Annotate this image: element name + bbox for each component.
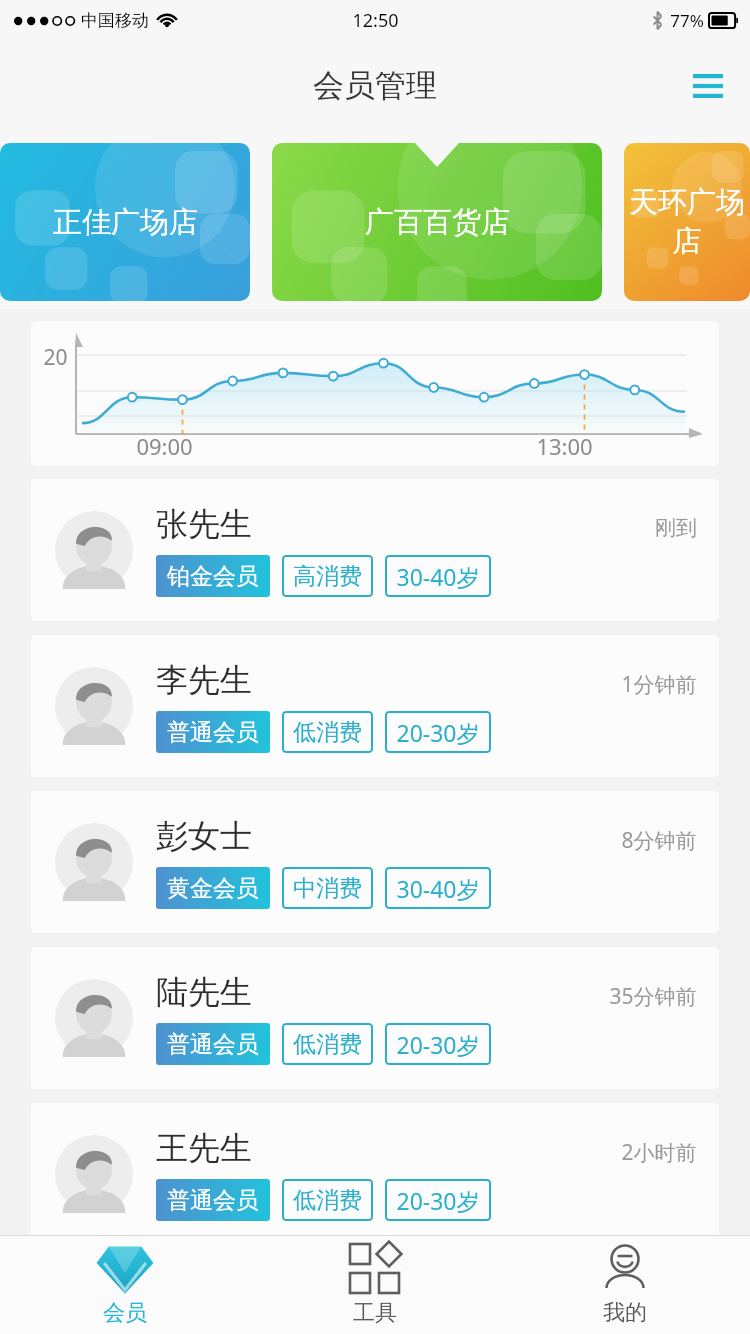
staticText: 黄金会员 — [167, 874, 259, 903]
button[interactable]: 30-40岁 — [385, 555, 491, 597]
button[interactable]: 20-30岁 — [385, 1023, 491, 1065]
staticText: 工具 — [353, 1299, 397, 1327]
staticText: 李先生 — [156, 660, 252, 700]
button[interactable]: 20 — [31, 321, 719, 466]
button[interactable]: 铂金会员 — [156, 555, 270, 597]
button[interactable]: 广百百货店 — [272, 143, 602, 301]
button[interactable]: Menu — [680, 58, 736, 114]
staticText: 天环广场店 — [624, 184, 750, 260]
staticText: 低消费 — [293, 1030, 362, 1059]
button[interactable]: 李先生 — [31, 635, 719, 777]
button[interactable]: 我的 — [500, 1236, 750, 1334]
button[interactable]: 普通会员 — [156, 1179, 270, 1221]
staticText: 我的 — [603, 1299, 647, 1327]
button[interactable]: 高消费 — [282, 555, 373, 597]
staticText: 30-40岁 — [396, 873, 480, 904]
staticText: 广百百货店 — [365, 204, 510, 241]
button[interactable]: 张先生 — [31, 479, 719, 621]
staticText: 铂金会员 — [167, 562, 259, 591]
button[interactable]: 陆先生 — [31, 947, 719, 1089]
staticText: 会员 — [103, 1299, 147, 1327]
button[interactable]: 中消费 — [282, 867, 373, 909]
staticText: 陆先生 — [156, 972, 252, 1012]
staticText: 彭女士 — [156, 816, 252, 856]
staticText: 1分钟前 — [621, 670, 697, 699]
staticText: 低消费 — [293, 718, 362, 747]
staticText: 13:00 — [536, 431, 593, 461]
staticText: 09:00 — [136, 431, 193, 461]
staticText: 中国移动 — [81, 10, 149, 31]
staticText: 张先生 — [156, 504, 252, 544]
button[interactable]: 正佳广场店 — [0, 143, 250, 301]
button[interactable]: 工具 — [250, 1236, 500, 1334]
staticText: 刚到 — [655, 515, 697, 541]
staticText: 77% — [670, 9, 704, 32]
button[interactable]: 天环广场店 — [624, 143, 750, 301]
staticText: 20-30岁 — [396, 1029, 480, 1060]
button[interactable]: 低消费 — [282, 711, 373, 753]
button[interactable]: 王先生 — [31, 1103, 719, 1245]
staticText: 高消费 — [293, 562, 362, 591]
button[interactable]: 低消费 — [282, 1179, 373, 1221]
button[interactable]: 20-30岁 — [385, 1179, 491, 1221]
staticText: 普通会员 — [167, 718, 259, 747]
staticText: 普通会员 — [167, 1030, 259, 1059]
staticText: 低消费 — [293, 1186, 362, 1215]
button[interactable]: 普通会员 — [156, 1023, 270, 1065]
staticText: 8分钟前 — [621, 826, 697, 855]
staticText: 中消费 — [293, 874, 362, 903]
button[interactable]: 低消费 — [282, 1023, 373, 1065]
staticText: 20-30岁 — [396, 1185, 480, 1216]
staticText: 普通会员 — [167, 1186, 259, 1215]
staticText: 20 — [43, 343, 68, 372]
button[interactable]: 30-40岁 — [385, 867, 491, 909]
staticText: 正佳广场店 — [53, 204, 198, 241]
staticText: 30-40岁 — [396, 561, 480, 592]
button[interactable]: 会员 — [0, 1236, 250, 1334]
button[interactable]: 20-30岁 — [385, 711, 491, 753]
button[interactable]: 黄金会员 — [156, 867, 270, 909]
button[interactable]: 普通会员 — [156, 711, 270, 753]
staticText: 2小时前 — [621, 1138, 697, 1167]
staticText: 王先生 — [156, 1128, 252, 1168]
staticText: 35分钟前 — [609, 982, 697, 1011]
button[interactable]: 彭女士 — [31, 791, 719, 933]
staticText: 20-30岁 — [396, 717, 480, 748]
staticText: 会员管理 — [313, 66, 437, 105]
staticText: 12:50 — [352, 8, 399, 33]
